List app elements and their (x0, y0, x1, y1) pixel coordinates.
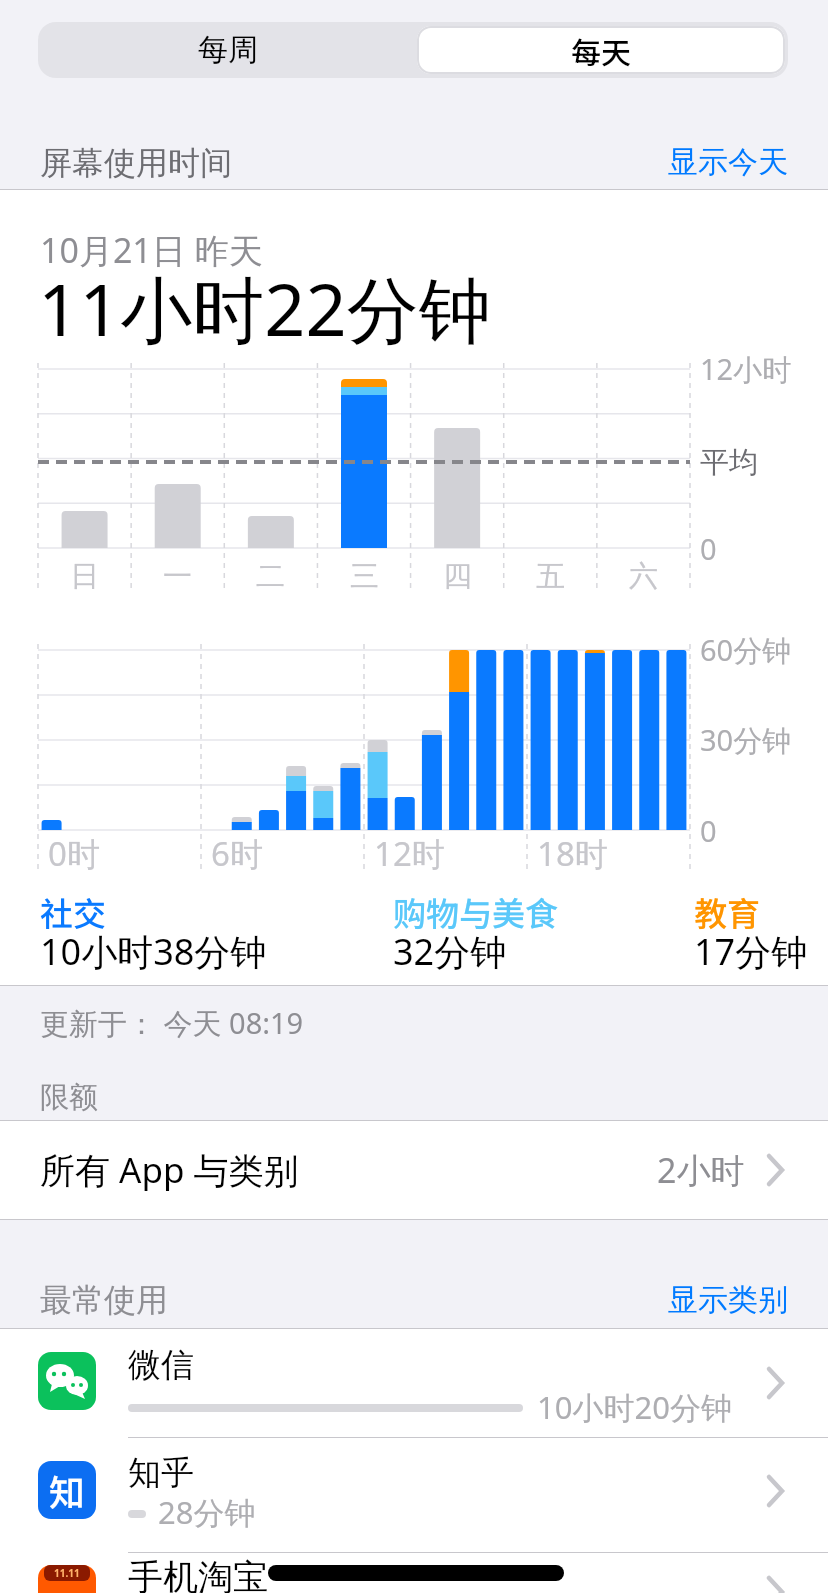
staticText: 最常使用 (40, 1280, 168, 1320)
staticText: 四 (443, 558, 472, 595)
staticText: 教育 (694, 888, 760, 936)
staticText: 0 (700, 811, 717, 850)
staticText: 10小时20分钟 (537, 1386, 732, 1428)
button[interactable]: 显示今天 (668, 143, 788, 181)
staticText: 所有 App 与类别 (40, 1146, 299, 1194)
button[interactable] (0, 1121, 828, 1219)
staticText: 知乎 (128, 1452, 194, 1494)
staticText: 五 (536, 558, 565, 595)
staticText: 17分钟 (694, 927, 808, 976)
staticText: 社交 (40, 888, 106, 936)
staticText: 12时 (374, 831, 445, 876)
staticText: 每天 (571, 29, 631, 72)
staticText: 微信 (128, 1344, 194, 1386)
button[interactable] (0, 1553, 828, 1593)
staticText: 11小时22分钟 (38, 259, 491, 357)
staticText: 10月21日 昨天 (40, 227, 263, 273)
staticText: 18时 (537, 831, 608, 876)
staticText: 六 (629, 558, 658, 595)
staticText: 限额 (40, 1079, 98, 1116)
button[interactable] (0, 1329, 828, 1437)
staticText: 平均 (700, 444, 758, 481)
staticText: 2小时 (657, 1147, 745, 1193)
staticText: 一 (163, 558, 192, 595)
button[interactable]: 显示类别 (668, 1281, 788, 1319)
staticText: 60分钟 (700, 630, 792, 670)
button[interactable] (0, 1438, 828, 1546)
staticText: 12小时 (700, 349, 792, 389)
button[interactable] (40, 22, 417, 78)
staticText: 10小时38分钟 (40, 927, 267, 976)
staticText: 日 (70, 558, 99, 595)
staticText: 二 (256, 558, 285, 595)
staticText: 三 (350, 558, 379, 595)
button[interactable] (417, 26, 785, 74)
staticText: 0时 (48, 831, 100, 876)
staticText: 28分钟 (158, 1491, 256, 1533)
staticText: 30分钟 (700, 720, 792, 760)
staticText: 0 (700, 529, 717, 568)
staticText: 每周 (198, 31, 258, 69)
staticText: 屏幕使用时间 (40, 143, 232, 183)
staticText: 知 (49, 1464, 86, 1516)
staticText: 购物与美食 (393, 888, 558, 936)
staticText: 更新于： 今天 08:19 (40, 1003, 304, 1043)
staticText: 32分钟 (393, 927, 507, 976)
staticText: 6时 (211, 831, 263, 876)
staticText: 手机淘宝 (128, 1555, 268, 1593)
staticText: 11.11 (54, 1566, 80, 1580)
